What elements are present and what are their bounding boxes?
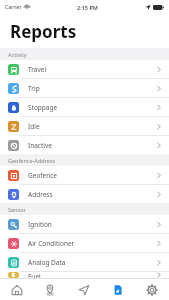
staticText: Stoppage (28, 103, 58, 112)
staticText: Geofence-Address (8, 157, 56, 164)
button[interactable]: Home (0, 279, 33, 300)
button[interactable]: Fuel (0, 272, 169, 278)
staticText: Analog Data (28, 258, 66, 267)
button[interactable]: Address (0, 185, 169, 203)
staticText: Address (28, 190, 53, 199)
button[interactable]: Settings (135, 279, 169, 300)
staticText: Reports (10, 20, 77, 43)
button[interactable]: Idle (0, 117, 169, 135)
button[interactable]: Trip (0, 79, 169, 97)
button[interactable]: Geofence (0, 166, 169, 184)
staticText: Ignition (28, 220, 52, 229)
staticText: Trip (28, 84, 40, 93)
staticText: Inactive (28, 141, 52, 150)
button[interactable]: Places (33, 279, 67, 300)
button[interactable]: Inactive (0, 136, 169, 154)
staticText: Fuel (28, 272, 41, 278)
staticText: Idle (28, 122, 40, 131)
staticText: Geofence (28, 171, 58, 180)
button[interactable]: Stoppage (0, 98, 169, 116)
button[interactable]: Ignition (0, 215, 169, 233)
staticText: 2:15 PM (77, 4, 98, 11)
staticText: Activity (8, 51, 27, 58)
staticText: Air Conditioner (28, 239, 75, 248)
staticText: Travel (28, 65, 47, 74)
button[interactable]: Air Conditioner (0, 234, 169, 252)
button[interactable]: Travel (0, 60, 169, 78)
button[interactable]: Analog Data (0, 253, 169, 271)
staticText: Carrier (5, 4, 22, 11)
staticText: Sensor (8, 206, 26, 213)
button[interactable]: Navigate (67, 279, 101, 300)
button[interactable]: Reports (101, 279, 135, 300)
